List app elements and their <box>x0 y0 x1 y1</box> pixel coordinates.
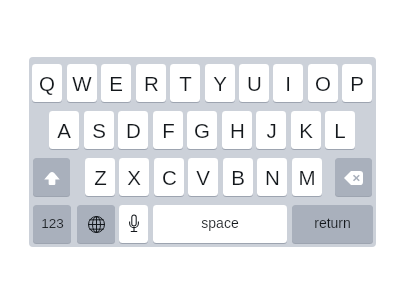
staticText: R <box>144 72 159 95</box>
button[interactable]: P <box>342 64 372 102</box>
button[interactable]: R <box>136 64 166 102</box>
button[interactable]: Voice dictation <box>119 205 148 243</box>
button[interactable]: return <box>292 205 373 243</box>
button[interactable]: D <box>118 111 148 149</box>
staticText: P <box>350 72 364 95</box>
button[interactable]: Q <box>32 64 62 102</box>
staticText: D <box>126 119 141 142</box>
staticText: L <box>334 119 346 142</box>
button[interactable]: A <box>49 111 79 149</box>
button[interactable]: Z <box>85 158 115 196</box>
staticText: Q <box>39 72 55 95</box>
button[interactable]: W <box>67 64 97 102</box>
button[interactable]: Change keyboard language <box>77 205 115 243</box>
staticText: I <box>285 72 291 95</box>
staticText: K <box>299 119 313 142</box>
button[interactable]: I <box>273 64 303 102</box>
staticText: J <box>266 119 277 142</box>
button[interactable]: B <box>223 158 253 196</box>
staticText: U <box>247 72 262 95</box>
button[interactable]: M <box>292 158 322 196</box>
button[interactable]: E <box>101 64 131 102</box>
button[interactable]: S <box>84 111 114 149</box>
staticText: X <box>127 166 141 189</box>
button[interactable]: space <box>153 205 287 243</box>
button[interactable]: Numbers <box>33 205 71 243</box>
staticText: F <box>162 119 175 142</box>
button[interactable]: O <box>308 64 338 102</box>
staticText: B <box>231 166 245 189</box>
button[interactable]: G <box>187 111 217 149</box>
staticText: A <box>57 119 71 142</box>
staticText: C <box>162 166 177 189</box>
button[interactable]: N <box>257 158 287 196</box>
staticText: return <box>314 215 351 231</box>
staticText: T <box>179 72 192 95</box>
button[interactable]: F <box>153 111 183 149</box>
staticText: S <box>92 119 106 142</box>
button[interactable]: K <box>291 111 321 149</box>
staticText: M <box>298 166 316 189</box>
staticText: 123 <box>41 216 64 231</box>
staticText: O <box>315 72 331 95</box>
staticText: Z <box>94 166 107 189</box>
button[interactable]: T <box>170 64 200 102</box>
button[interactable]: U <box>239 64 269 102</box>
button[interactable]: Shift <box>33 158 70 196</box>
staticText: G <box>194 119 210 142</box>
staticText: Y <box>213 72 227 95</box>
button[interactable]: J <box>256 111 286 149</box>
button[interactable]: H <box>222 111 252 149</box>
button[interactable]: C <box>154 158 184 196</box>
staticText: V <box>196 166 210 189</box>
button[interactable]: X <box>119 158 149 196</box>
button[interactable]: V <box>188 158 218 196</box>
staticText: H <box>230 119 245 142</box>
staticText: N <box>265 166 280 189</box>
button[interactable]: Y <box>205 64 235 102</box>
button[interactable]: L <box>325 111 355 149</box>
staticText: W <box>72 72 92 95</box>
staticText: E <box>109 72 123 95</box>
button[interactable]: Backspace <box>335 158 372 196</box>
staticText: space <box>201 215 239 231</box>
